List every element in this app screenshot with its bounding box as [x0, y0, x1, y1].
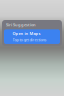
- staticText: Tap to get directions: [12, 37, 46, 42]
- button[interactable]: Open in Maps: [4, 29, 60, 44]
- staticText: Open in Maps: [12, 31, 40, 36]
- staticText: Siri Suggestion: [6, 22, 36, 27]
